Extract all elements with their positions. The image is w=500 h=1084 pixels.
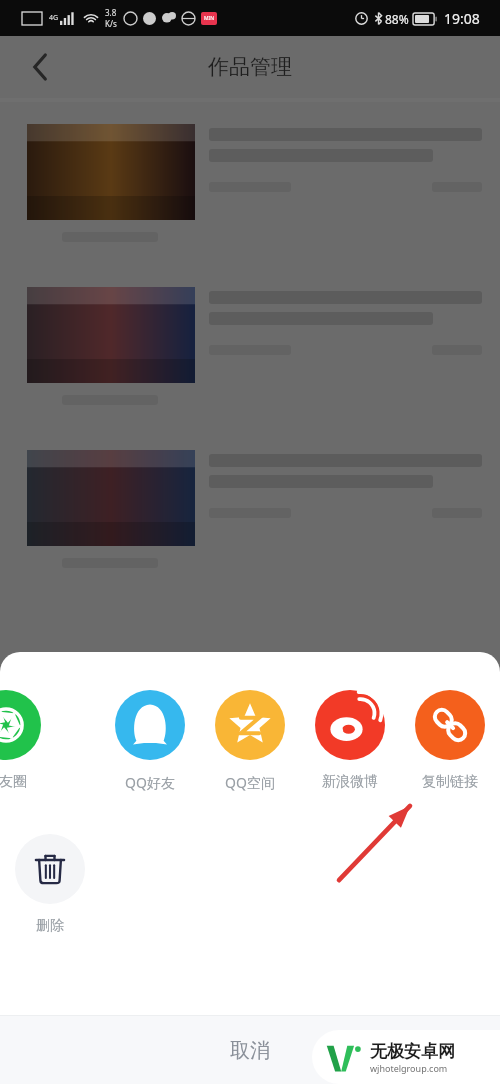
staticText: 无极安卓网 xyxy=(370,1041,455,1062)
staticText: 新浪微博 xyxy=(322,773,378,791)
staticText: 4G xyxy=(49,13,59,23)
button[interactable]: 删除 xyxy=(0,834,100,935)
staticText: K/s xyxy=(105,18,117,29)
staticText: 复制链接 xyxy=(422,773,478,791)
button[interactable]: 朋友圈 xyxy=(0,690,56,791)
staticText: QQ空间 xyxy=(225,773,275,792)
staticText: 88% xyxy=(385,11,409,27)
staticText: 19:08 xyxy=(444,9,480,28)
staticText: 3.8 xyxy=(105,7,117,18)
staticText: 删除 xyxy=(36,917,64,935)
staticText: QQ好友 xyxy=(125,773,175,792)
button[interactable]: 新浪微博 xyxy=(300,690,400,791)
button[interactable]: QQ空间 xyxy=(200,690,300,792)
button[interactable]: 复制链接 xyxy=(400,690,500,791)
staticText: 朋友圈 xyxy=(0,773,27,791)
button[interactable]: 取消 xyxy=(0,1016,500,1084)
staticText: 作品管理 xyxy=(208,54,292,80)
staticText: wjhotelgroup.com xyxy=(370,1062,448,1074)
staticText: MIN xyxy=(204,15,215,22)
button[interactable]: QQ好友 xyxy=(100,690,200,792)
staticText: 取消 xyxy=(230,1038,270,1063)
button[interactable]: Back xyxy=(18,45,62,89)
